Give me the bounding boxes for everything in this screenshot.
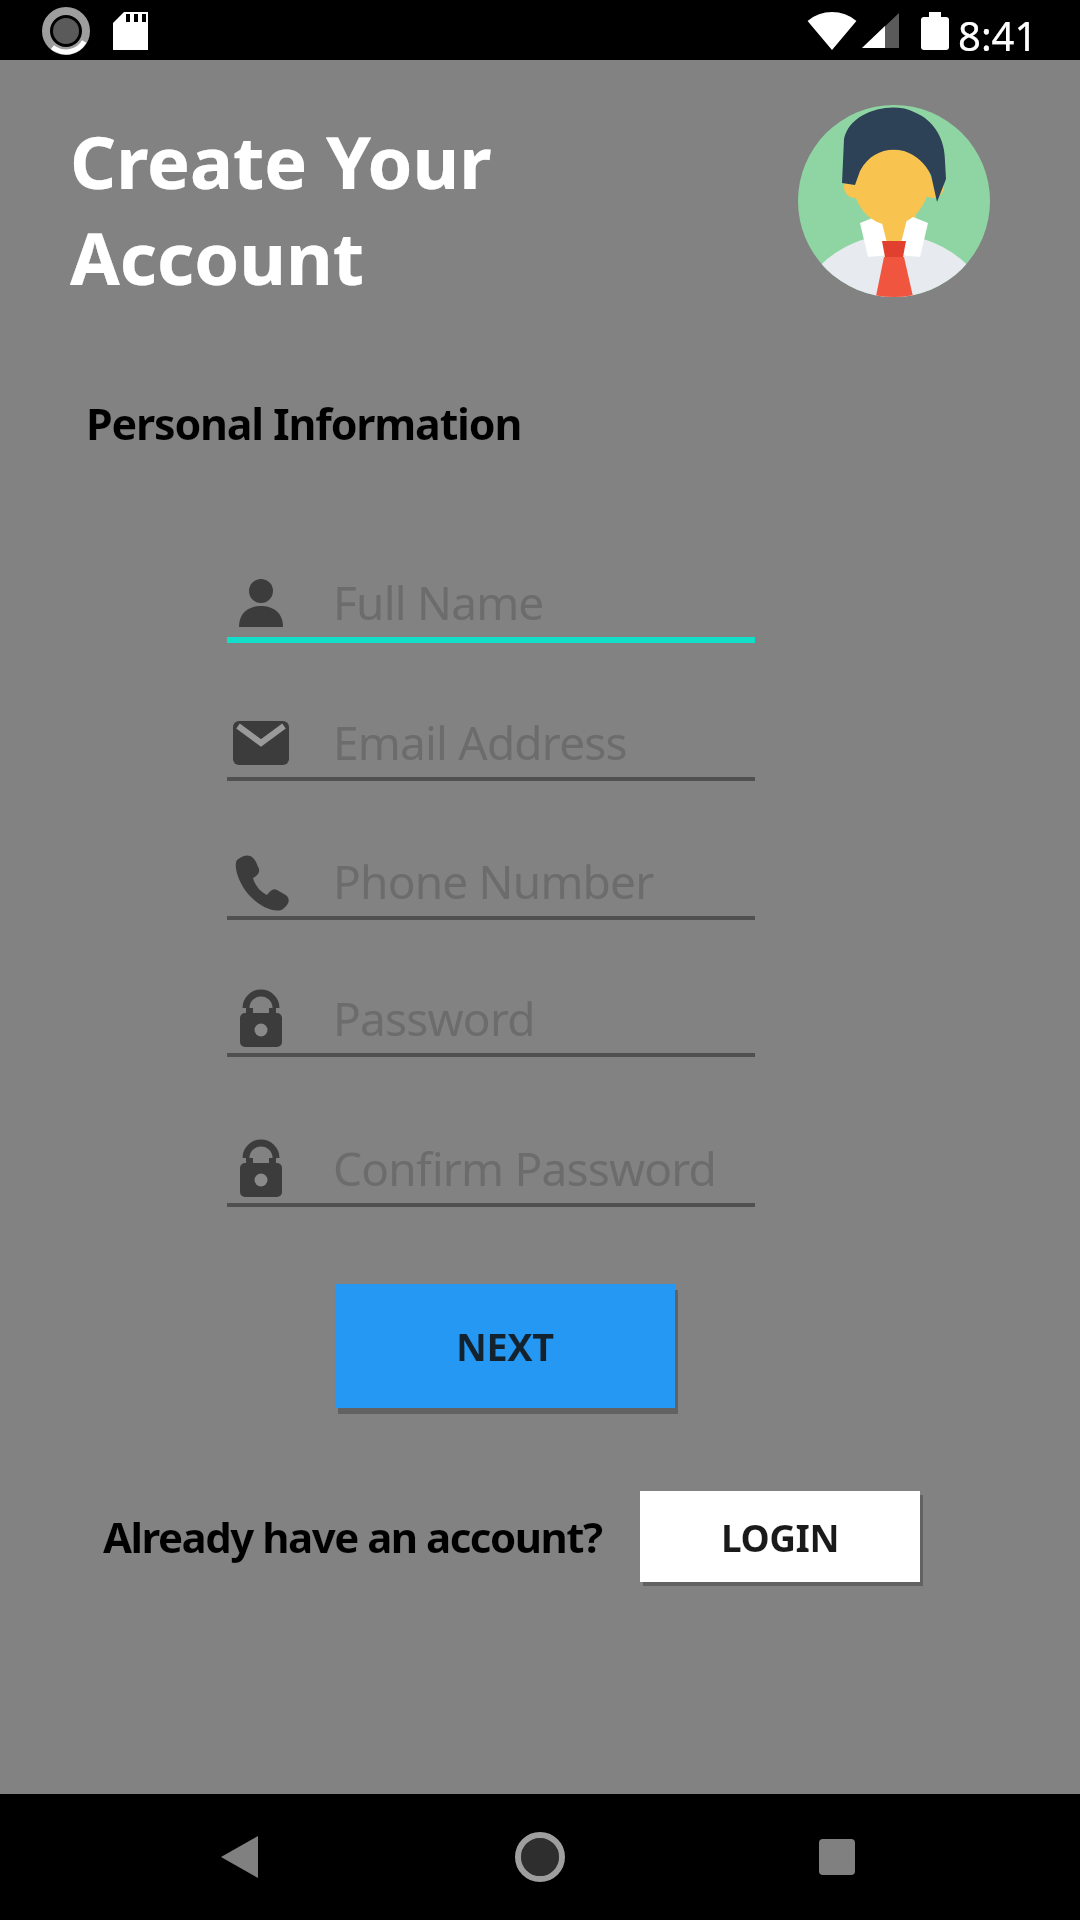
staticText: Password	[333, 987, 535, 1050]
staticText: Already have an account?	[103, 1508, 602, 1565]
staticText: NEXT	[456, 1320, 554, 1372]
staticText: Email Address	[333, 711, 627, 774]
staticText: LOGIN	[721, 1512, 839, 1562]
staticText: Full Name	[333, 571, 544, 634]
staticText: Phone Number	[333, 850, 654, 913]
staticText: 8:41	[958, 8, 1038, 62]
button[interactable]: LOGIN	[640, 1491, 920, 1582]
button[interactable]: Password	[227, 949, 755, 1057]
button[interactable]: Email Address	[227, 673, 755, 781]
staticText: Confirm Password	[333, 1137, 717, 1200]
staticText: Create Your Account	[70, 112, 492, 306]
button[interactable]: Confirm Password	[227, 1099, 755, 1207]
staticText: Personal Information	[86, 394, 522, 453]
button[interactable]: Full Name	[227, 533, 755, 643]
button[interactable]: Phone Number	[227, 812, 755, 920]
button[interactable]: NEXT	[335, 1284, 675, 1408]
